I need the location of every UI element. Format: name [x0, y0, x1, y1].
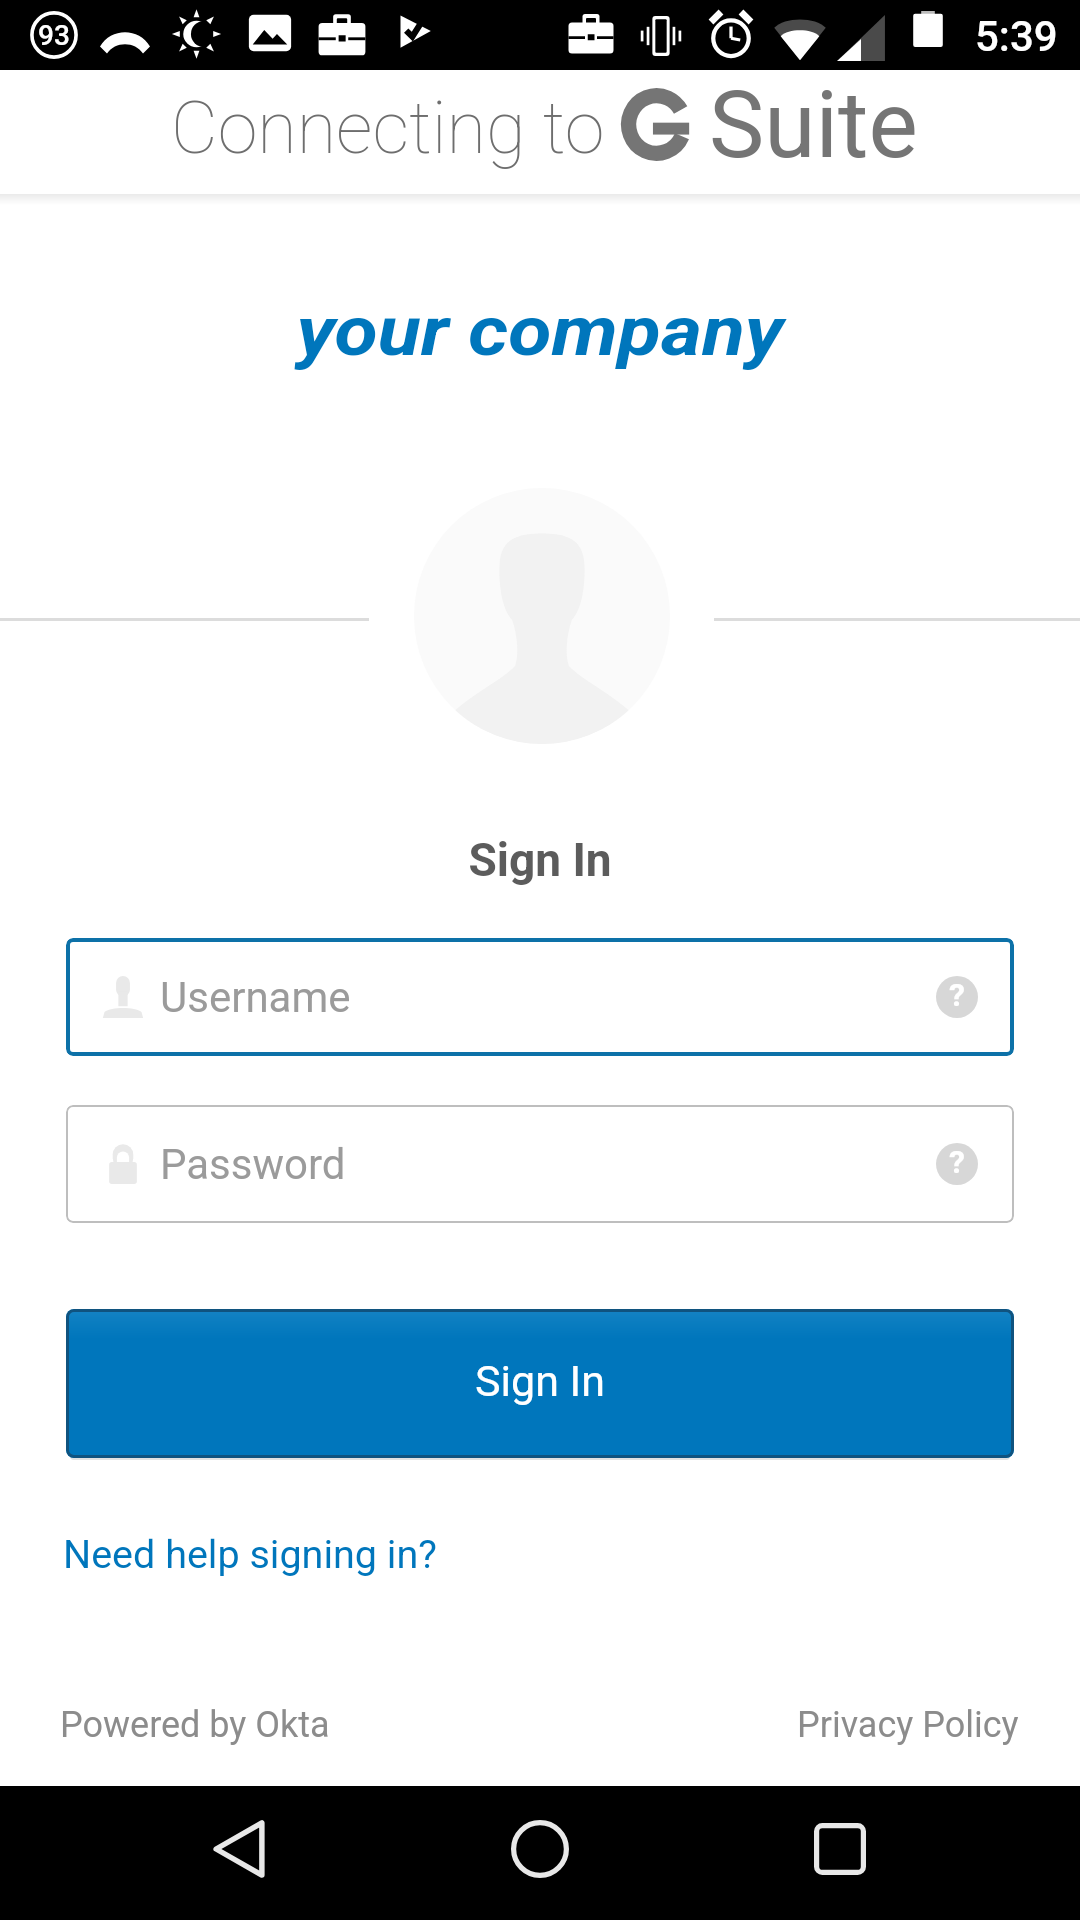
button[interactable]: Help: [936, 976, 978, 1018]
staticText: Username: [160, 973, 351, 1022]
staticText: Powered by Okta: [60, 1704, 330, 1746]
staticText: 5:39: [975, 12, 1058, 61]
staticText: ?: [936, 976, 978, 1018]
staticText: Privacy Policy: [797, 1704, 1019, 1746]
button[interactable]: Recent apps: [780, 1786, 900, 1920]
staticText: Need help signing in?: [63, 1531, 437, 1577]
button[interactable]: Privacy Policy: [797, 1704, 1019, 1746]
button[interactable]: Powered by Okta: [60, 1704, 330, 1746]
button[interactable]: Back: [180, 1786, 300, 1920]
button[interactable]: Need help signing in?: [63, 1531, 437, 1577]
staticText: ?: [936, 1143, 978, 1185]
staticText: 93: [38, 19, 70, 52]
button[interactable]: Sign In: [66, 1309, 1014, 1458]
staticText: your company: [0, 291, 1080, 372]
staticText: Suite: [709, 71, 918, 180]
button[interactable]: Username: [66, 938, 1014, 1056]
button[interactable]: Home: [480, 1786, 600, 1920]
staticText: Sign In: [475, 1356, 605, 1406]
staticText: Sign In: [0, 833, 1080, 887]
button[interactable]: Help: [936, 1143, 978, 1185]
button[interactable]: Password: [66, 1105, 1014, 1223]
staticText: Password: [160, 1140, 346, 1189]
staticText: Connecting to: [171, 86, 605, 170]
